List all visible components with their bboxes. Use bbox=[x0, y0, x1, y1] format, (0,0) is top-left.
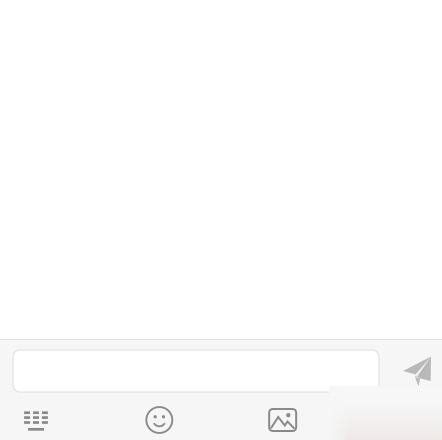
button[interactable]: Emoji bbox=[123, 392, 195, 440]
button[interactable]: Photos bbox=[247, 392, 319, 440]
button[interactable]: Message bbox=[13, 350, 379, 392]
button[interactable]: More bbox=[370, 392, 442, 440]
button[interactable]: Keyboard bbox=[0, 392, 72, 440]
button[interactable]: Send bbox=[379, 350, 442, 392]
